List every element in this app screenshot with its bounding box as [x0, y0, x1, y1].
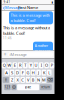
- staticText: D: [16, 70, 19, 75]
- button[interactable]: Q: [2, 62, 6, 68]
- button[interactable]: F: [20, 70, 25, 76]
- staticText: C: [21, 77, 24, 82]
- button[interactable]: Z: [10, 77, 14, 83]
- staticText: A: [5, 70, 8, 75]
- staticText: Q: [3, 63, 6, 68]
- staticText: V: [27, 77, 29, 82]
- staticText: H: [32, 70, 35, 75]
- button[interactable]: L: [47, 70, 51, 76]
- staticText: ‹: [3, 3, 5, 12]
- button[interactable]: return: [40, 84, 52, 90]
- button[interactable]: U: [34, 62, 38, 68]
- button[interactable]: O: [44, 62, 49, 68]
- button[interactable]: space: [17, 84, 39, 90]
- staticText: ☺: [12, 85, 16, 89]
- staticText: E: [14, 63, 16, 68]
- staticText: P: [51, 63, 53, 68]
- staticText: Another message here: [35, 43, 51, 59]
- button[interactable]: ‹: [3, 3, 23, 12]
- button[interactable]: ⌫: [47, 77, 53, 83]
- staticText: G: [26, 70, 29, 75]
- staticText: ⌫: [47, 78, 53, 82]
- staticText: O: [45, 63, 48, 68]
- staticText: This is a message without a bubble. Cool…: [3, 25, 50, 36]
- staticText: Messages: [5, 5, 23, 10]
- staticText: B: [32, 77, 35, 82]
- staticText: 9:41: [3, 0, 10, 4]
- staticText: T: [24, 63, 26, 68]
- button[interactable]: W: [7, 62, 12, 68]
- staticText: +: [3, 51, 6, 58]
- staticText: M: [42, 77, 46, 82]
- button[interactable]: Add attachment: [3, 52, 7, 56]
- button[interactable]: V: [26, 77, 30, 83]
- staticText: K: [43, 70, 45, 75]
- button[interactable]: 123: [4, 84, 11, 90]
- button[interactable]: D: [15, 70, 20, 76]
- button[interactable]: P: [49, 62, 54, 68]
- button[interactable]: J: [36, 70, 41, 76]
- staticText: 123: [4, 85, 10, 89]
- button[interactable]: X: [15, 77, 20, 83]
- staticText: This is a message with a bubble. Cool!: [11, 12, 50, 23]
- button[interactable]: B: [31, 77, 36, 83]
- staticText: L: [48, 70, 50, 75]
- staticText: S: [11, 70, 13, 75]
- staticText: J: [38, 70, 39, 75]
- staticText: F: [22, 70, 24, 75]
- button[interactable]: C: [20, 77, 25, 83]
- staticText: Yep!: [44, 62, 51, 67]
- staticText: Y: [30, 63, 32, 68]
- button[interactable]: ☺: [11, 84, 16, 90]
- staticText: First Name: [18, 5, 38, 10]
- button[interactable]: M: [42, 77, 46, 83]
- staticText: 11:46: [3, 36, 12, 40]
- button[interactable]: I: [39, 62, 43, 68]
- staticText: Z: [11, 77, 13, 82]
- button[interactable]: S: [10, 70, 14, 76]
- button[interactable]: G: [26, 70, 30, 76]
- staticText: R: [19, 63, 21, 68]
- staticText: N: [37, 77, 40, 82]
- button[interactable]: T: [23, 62, 28, 68]
- button[interactable]: K: [42, 70, 46, 76]
- button[interactable]: ⇧: [3, 77, 9, 83]
- staticText: space: [25, 85, 32, 89]
- staticText: I: [41, 63, 42, 68]
- staticText: X: [16, 77, 18, 82]
- button[interactable]: Y: [28, 62, 33, 68]
- button[interactable]: H: [31, 70, 36, 76]
- staticText: W: [7, 63, 11, 68]
- button[interactable]: E: [12, 62, 17, 68]
- button[interactable]: N: [36, 77, 41, 83]
- staticText: return: [41, 85, 50, 89]
- staticText: U: [34, 63, 37, 68]
- button[interactable]: A: [4, 70, 9, 76]
- staticText: ⇧: [4, 78, 7, 82]
- staticText: iMessage: [9, 52, 26, 57]
- button[interactable]: R: [18, 62, 22, 68]
